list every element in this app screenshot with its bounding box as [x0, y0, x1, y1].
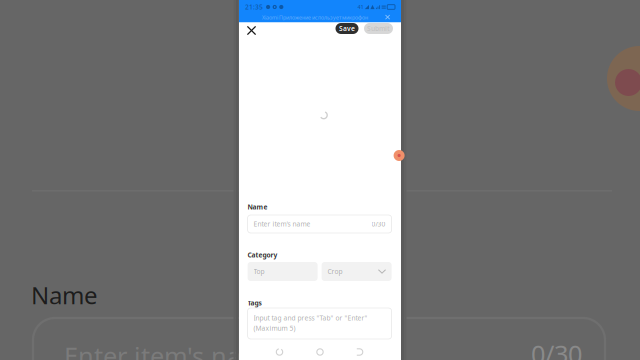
staticText: Name — [248, 202, 268, 211]
button[interactable]: Input tag and press "Tab" or "Enter" — [248, 308, 392, 339]
staticText: Crop — [328, 267, 343, 276]
button[interactable]: Close — [244, 23, 258, 37]
staticText: 41 — [357, 3, 363, 11]
staticText: (Maximum 5) — [254, 324, 296, 333]
button[interactable]: Recents — [273, 346, 285, 358]
staticText: Submit — [367, 24, 390, 33]
staticText: Enter item's name — [254, 220, 311, 228]
staticText: Xiaomi Приложение использует микрофон — [262, 14, 368, 21]
staticText: 21:35 — [245, 3, 263, 11]
button[interactable]: Home — [314, 346, 326, 358]
button[interactable]: Back — [354, 346, 366, 358]
button[interactable]: Enter item's name — [248, 215, 392, 233]
staticText: Tags — [248, 298, 262, 307]
staticText: Enter item's na — [64, 339, 241, 360]
staticText: Input tag and press "Tab" or "Enter" — [254, 313, 368, 322]
staticText: 0/30 — [372, 220, 386, 228]
staticText: Name — [31, 279, 98, 311]
staticText: Category — [248, 250, 278, 259]
staticText: 0/30 — [531, 337, 582, 360]
staticText: Save — [339, 24, 355, 33]
button[interactable]: Add photo — [394, 150, 405, 161]
button[interactable]: Submit — [364, 23, 393, 34]
staticText: Top — [254, 267, 265, 276]
button[interactable]: Save — [335, 23, 358, 34]
button[interactable]: Top — [248, 262, 318, 281]
button[interactable]: Crop — [322, 262, 392, 281]
